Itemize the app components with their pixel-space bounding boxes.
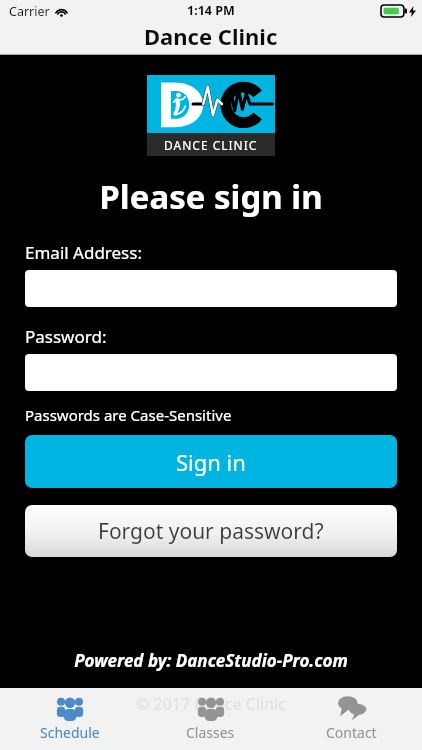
staticText: DANCE CLINIC: [164, 137, 258, 153]
button[interactable]: Forgot your password?: [25, 505, 397, 557]
staticText: Please sign in: [0, 174, 422, 219]
staticText: Forgot your password?: [98, 517, 324, 546]
staticText: Dance Clinic: [144, 21, 278, 51]
button[interactable]: Schedule: [0, 688, 140, 750]
staticText: Carrier: [9, 3, 50, 20]
staticText: Classes: [186, 723, 235, 742]
staticText: Passwords are Case-Sensitive: [25, 405, 232, 425]
button[interactable]: Classes: [140, 688, 281, 750]
staticText: Password:: [25, 325, 107, 348]
button[interactable]: Contact: [281, 688, 422, 750]
staticText: Schedule: [40, 723, 100, 742]
staticText: Powered by: DanceStudio-Pro.com: [0, 649, 422, 672]
button[interactable]: Sign in: [25, 435, 397, 488]
staticText: Sign in: [176, 447, 246, 477]
button[interactable]: [25, 270, 397, 307]
staticText: © 2017 Dance Clinic: [136, 693, 286, 715]
staticText: Email Address:: [25, 241, 142, 264]
staticText: Contact: [326, 723, 377, 742]
button[interactable]: [25, 354, 397, 391]
staticText: 1:14 PM: [187, 2, 235, 19]
